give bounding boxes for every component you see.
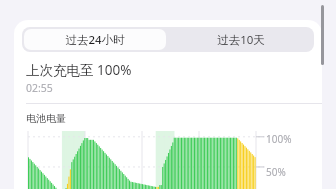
staticText: 过去24小时 xyxy=(65,32,125,48)
staticText: 50% xyxy=(266,165,286,179)
button[interactable]: 过去24小时 xyxy=(24,29,166,50)
staticText: 过去10天 xyxy=(217,32,265,48)
staticText: 02:55 xyxy=(26,81,53,95)
staticText: 上次充电至 100% xyxy=(26,61,132,79)
staticText: 电池电量 xyxy=(26,112,66,125)
button[interactable]: 过去10天 xyxy=(168,27,314,52)
staticText: 100% xyxy=(266,132,292,146)
